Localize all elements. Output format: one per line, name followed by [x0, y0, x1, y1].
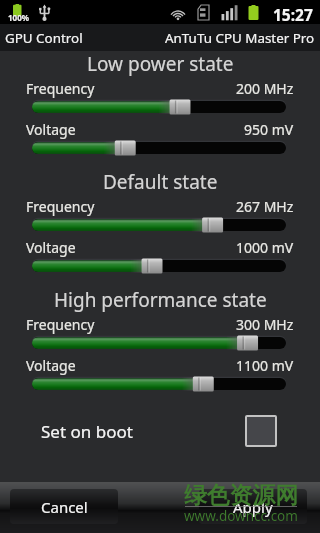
- staticText: Frequency: [26, 79, 95, 98]
- button[interactable]: Cancel: [10, 489, 118, 524]
- staticText: 1100 mV: [236, 356, 294, 375]
- staticText: Frequency: [26, 197, 95, 216]
- staticText: High performance state: [54, 287, 267, 313]
- staticText: Apply: [233, 497, 273, 517]
- button[interactable]: [0, 375, 320, 393]
- button[interactable]: Apply: [199, 489, 307, 524]
- staticText: Cancel: [41, 497, 88, 517]
- staticText: 950 mV: [244, 120, 294, 139]
- button[interactable]: Set on boot: [41, 407, 277, 455]
- staticText: 15:27: [273, 4, 313, 25]
- staticText: 100%: [8, 12, 29, 23]
- button[interactable]: [0, 334, 320, 352]
- staticText: Default state: [103, 169, 218, 195]
- staticText: 1000 mV: [236, 238, 294, 257]
- button[interactable]: [0, 139, 320, 157]
- staticText: 267 MHz: [236, 197, 294, 216]
- button[interactable]: [0, 257, 320, 275]
- staticText: Voltage: [26, 238, 76, 257]
- staticText: GPU Control: [5, 29, 83, 47]
- staticText: Set on boot: [41, 420, 133, 443]
- staticText: www.downcc.com: [184, 507, 298, 525]
- staticText: AnTuTu CPU Master Pro: [165, 29, 315, 47]
- staticText: 200 MHz: [236, 79, 294, 98]
- staticText: 300 MHz: [236, 315, 294, 334]
- staticText: Frequency: [26, 315, 95, 334]
- staticText: Low power state: [87, 51, 234, 77]
- staticText: 绿色资源网: [184, 481, 298, 510]
- button[interactable]: [0, 98, 320, 116]
- button[interactable]: [0, 216, 320, 234]
- staticText: Voltage: [26, 356, 76, 375]
- staticText: Voltage: [26, 120, 76, 139]
